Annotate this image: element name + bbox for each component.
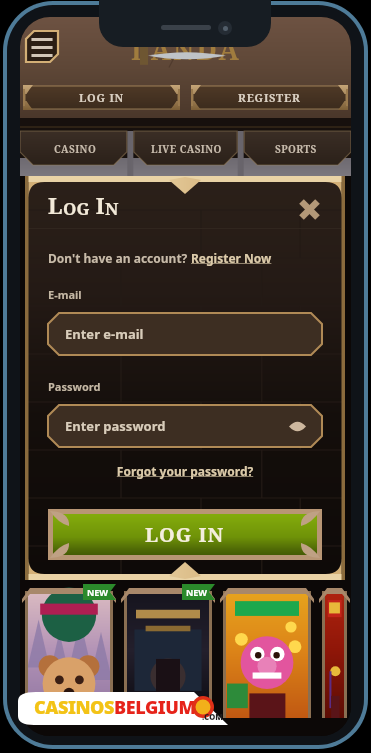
staticText: Enter e-mail [65,325,144,343]
staticText: LIVE CASINO [151,142,222,156]
button[interactable]: LOG IN [21,84,182,111]
staticText: Don't have an account? [48,250,191,266]
staticText: NEW [87,586,109,598]
button[interactable]: CASINO [20,118,131,176]
button[interactable]: LIVE CASINO [131,118,241,176]
button[interactable] [318,583,351,718]
button[interactable]: LOG IN [48,509,322,560]
staticText: .COM [202,711,224,722]
button[interactable]: Menu [26,31,58,62]
button[interactable]: Enter e-mail [48,313,322,355]
button[interactable] [219,583,315,718]
button[interactable]: Close [298,198,321,221]
button[interactable]: Enter password [48,405,322,447]
staticText: Enter password [65,417,166,435]
button[interactable]: NEW [21,583,117,718]
button[interactable]: NEW [120,583,216,718]
button[interactable]: REGISTER [189,84,350,111]
staticText: E-mail [48,287,82,302]
other: Show password [289,420,306,433]
staticText: I [90,190,105,220]
staticText: N [105,197,119,220]
button[interactable]: Forgot your password? [48,463,322,479]
button[interactable]: SPORTS [241,118,351,176]
staticText: CASINOS [34,695,114,720]
staticText: CASINO [54,142,97,156]
staticText: LANDA [131,31,241,68]
staticText: L [48,190,63,220]
staticText: LOG IN [79,90,125,105]
staticText: SPORTS [275,142,317,156]
staticText: REGISTER [238,90,301,105]
staticText: BELGIUM [114,695,196,720]
button[interactable]: Register Now [191,250,272,266]
staticText: LOG IN [145,521,225,548]
staticText: OG [63,197,90,220]
staticText: Password [48,379,101,394]
staticText: NEW [186,586,208,598]
